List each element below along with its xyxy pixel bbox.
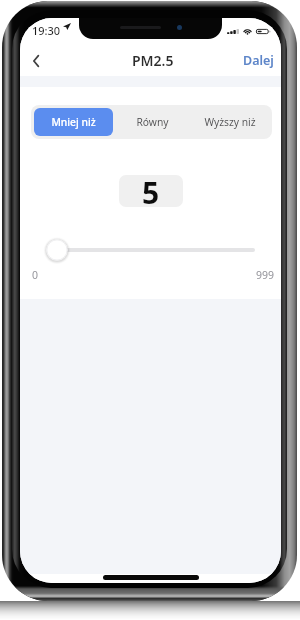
- button[interactable]: Mniej niż: [34, 108, 113, 136]
- staticText: PM2.5: [132, 51, 174, 70]
- button[interactable]: Dalej: [237, 47, 281, 74]
- staticText: Dalej: [243, 52, 274, 69]
- staticText: Wyższy niż: [204, 115, 256, 129]
- button[interactable]: Wyższy niż: [191, 108, 269, 136]
- staticText: Równy: [136, 115, 169, 129]
- staticText: 19:30: [32, 23, 61, 38]
- staticText: 0: [32, 268, 39, 282]
- button[interactable]: 5: [119, 175, 183, 207]
- staticText: 999: [256, 268, 275, 282]
- staticText: 5: [142, 175, 160, 204]
- staticText: Mniej niż: [51, 115, 96, 129]
- button[interactable]: Równy: [113, 108, 191, 136]
- button[interactable]: Back: [23, 45, 49, 76]
